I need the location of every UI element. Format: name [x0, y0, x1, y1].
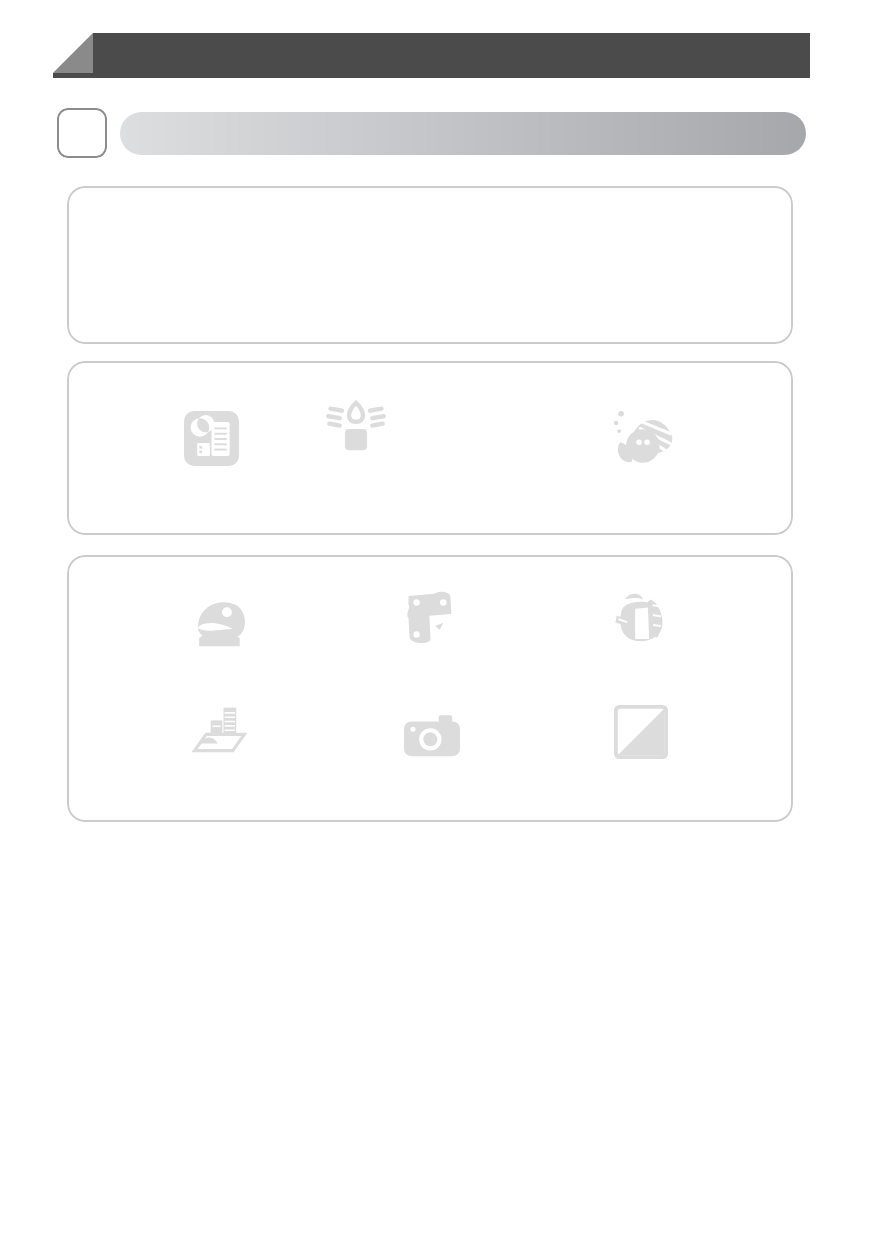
button[interactable]: Title bar [53, 33, 810, 78]
button[interactable]: Bag [612, 589, 670, 647]
button[interactable]: Menu [57, 108, 107, 158]
button[interactable]: Piece [405, 588, 463, 646]
button[interactable]: Bird [67, 555, 793, 822]
button[interactable]: Bird [191, 593, 249, 651]
button[interactable]: Night report [67, 361, 793, 535]
button[interactable]: Night report [184, 411, 239, 466]
button[interactable]: Candle [327, 397, 385, 455]
button[interactable]: Shell [613, 405, 675, 467]
button[interactable]: City [191, 703, 249, 761]
button[interactable] [67, 186, 793, 344]
button[interactable]: Contrast [614, 705, 668, 759]
button[interactable]: Search [120, 112, 806, 155]
button[interactable]: Camera [404, 708, 460, 764]
